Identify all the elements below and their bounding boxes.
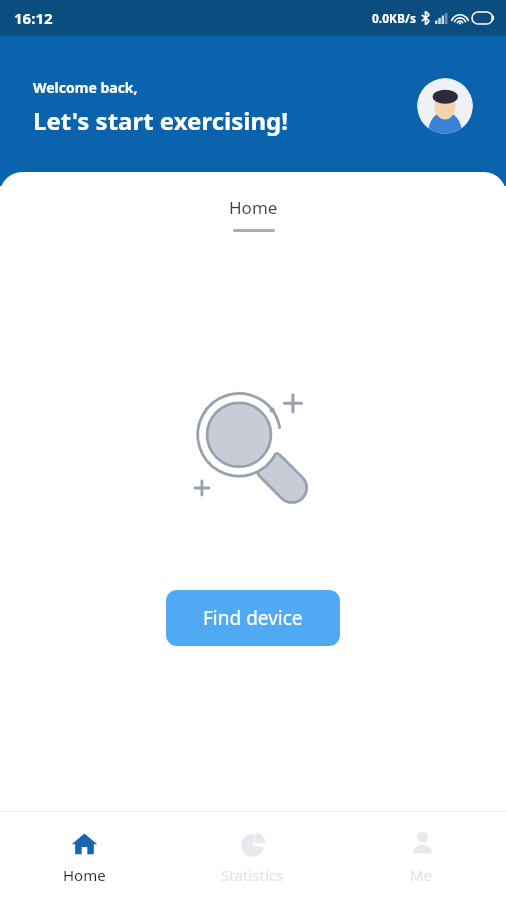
staticText: Home bbox=[63, 865, 106, 885]
staticText: Home bbox=[229, 196, 278, 219]
button[interactable]: Me bbox=[337, 812, 506, 900]
button[interactable]: Home bbox=[209, 192, 298, 236]
button[interactable]: Home bbox=[0, 812, 168, 900]
button[interactable]: Profile bbox=[417, 78, 473, 134]
staticText: Welcome back, bbox=[33, 78, 138, 97]
staticText: Statistics bbox=[221, 865, 284, 885]
staticText: 0.0KB/s bbox=[372, 10, 417, 26]
staticText: Me bbox=[410, 865, 433, 885]
button[interactable]: Find device bbox=[166, 590, 340, 646]
button[interactable]: Statistics bbox=[168, 812, 337, 900]
staticText: Find device bbox=[203, 605, 303, 631]
staticText: 16:12 bbox=[14, 8, 53, 28]
staticText: Let's start exercising! bbox=[33, 104, 288, 137]
